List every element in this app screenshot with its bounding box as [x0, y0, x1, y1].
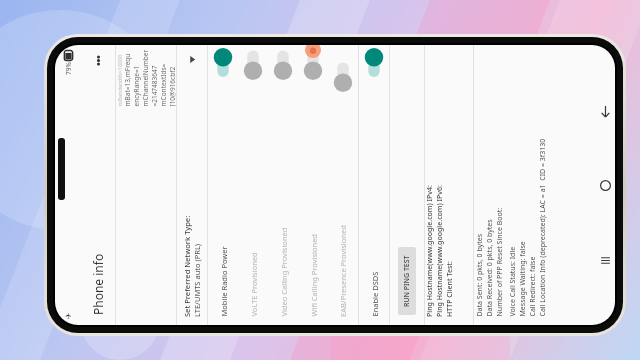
button[interactable]: More options [89, 51, 108, 70]
staticText: Call Redirect: false [527, 256, 537, 316]
button[interactable]: Expand [177, 45, 207, 325]
staticText: Message Waiting: false [517, 240, 527, 316]
button[interactable]: Back [596, 102, 614, 120]
button[interactable]: RUN PING TEST [398, 247, 416, 315]
button[interactable]: Toggle off [332, 59, 354, 93]
staticText: Ping Hostname(www.google.com) IPv4: [425, 185, 435, 317]
staticText: Enable DSDS [369, 271, 379, 316]
staticText: mContextIds= [158, 63, 167, 106]
button[interactable]: Toggle off [272, 47, 294, 81]
other: Expand [188, 55, 197, 64]
button[interactable]: Toggle on [359, 45, 389, 325]
staticText: Voice Call Status: Idle [507, 246, 517, 316]
staticText: encyRange=1 [131, 65, 140, 106]
staticText: mChannelNumber [140, 49, 149, 106]
button[interactable]: Toggle on [363, 47, 385, 81]
staticText: LTE/UMTS auto (PRL) [192, 243, 202, 317]
staticText: mBat=13,mFrequ [122, 53, 131, 106]
staticText: mBandwidth=10000 [115, 54, 122, 106]
button[interactable]: Toggle on [212, 47, 234, 81]
staticText: Video Calling Provisioned [278, 227, 288, 316]
staticText: Mobile Radio Power [218, 245, 228, 316]
button[interactable]: Toggle off [268, 45, 298, 325]
staticText: Data Sent: 0 pkts, 0 bytes [474, 233, 484, 316]
staticText: EAB/Presence Provisioned [338, 225, 348, 317]
button[interactable]: Toggle off [302, 47, 324, 81]
staticText: [10@916cbf2 [167, 66, 175, 106]
staticText: Set Preferred Network Type: [182, 215, 192, 317]
staticText: Call Location Info (deprecated): LAC = a… [537, 138, 547, 316]
button[interactable]: Toggle off [298, 45, 328, 325]
staticText: Data Received: 0 pkts, 0 bytes [484, 218, 494, 316]
button[interactable]: Home [596, 176, 614, 194]
staticText: Ping Hostname(www.google.com) IPv6: [435, 185, 445, 317]
staticText: HTTP Client Test: [445, 261, 455, 317]
button[interactable]: Toggle off [328, 45, 358, 325]
button[interactable]: Recent apps [596, 251, 614, 269]
staticText: Number of PPP Reset Since Boot: [494, 207, 504, 316]
staticText: 79% [64, 62, 73, 75]
staticText: RUN PING TEST [402, 255, 412, 307]
button[interactable]: Toggle on [208, 45, 238, 325]
staticText: Phone info [90, 253, 106, 315]
staticText: VoLTE Provisioned [248, 251, 258, 316]
staticText: Wifi Calling Provisioned [308, 233, 318, 316]
staticText: ✈ [64, 312, 73, 319]
button[interactable]: Toggle off [238, 45, 268, 325]
staticText: =2147483647 [149, 65, 158, 106]
button[interactable]: Toggle off [242, 47, 264, 81]
